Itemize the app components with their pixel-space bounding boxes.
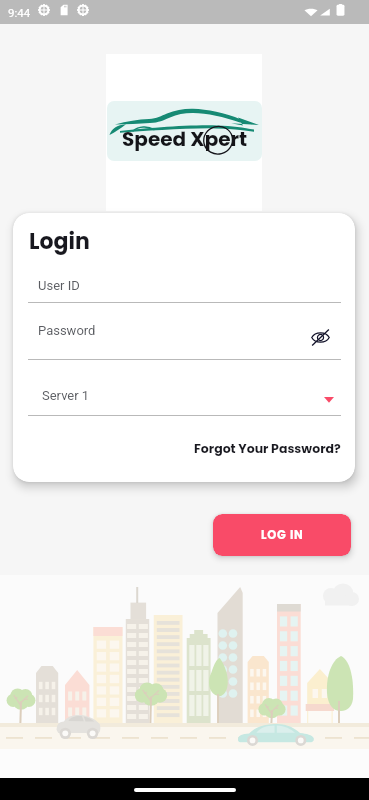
- staticText: Forgot Your Password?: [194, 440, 341, 457]
- staticText: 9:44: [8, 6, 31, 19]
- button[interactable]: Show password: [306, 323, 334, 351]
- staticText: Password: [38, 323, 96, 338]
- staticText: LOG IN: [261, 527, 304, 543]
- button[interactable]: Password: [28, 316, 341, 349]
- button[interactable]: Forgot Your Password?: [181, 437, 341, 459]
- staticText: Login: [29, 226, 90, 257]
- button[interactable]: User ID: [28, 271, 341, 302]
- button[interactable]: LOG IN: [213, 514, 351, 556]
- button[interactable]: Server 1: [28, 382, 341, 415]
- staticText: Server 1: [42, 388, 90, 403]
- staticText: User ID: [38, 278, 80, 293]
- staticText: Speed Xpert: [122, 125, 248, 153]
